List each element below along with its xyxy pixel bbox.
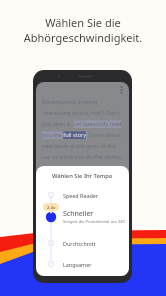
staticText: Steigert die Produktivität um 240 % bbox=[63, 219, 129, 225]
staticText: Speed Reader bbox=[63, 192, 99, 199]
staticText: Durchschnitt bbox=[63, 240, 96, 247]
button[interactable]: Schneller bbox=[36, 209, 129, 225]
staticText: You can even queue up a few bbox=[42, 164, 119, 172]
button[interactable]: Langsamer bbox=[36, 256, 129, 272]
staticText: just skim it. Let Speechify read bbox=[42, 120, 122, 128]
button[interactable]: Durchschnitt bbox=[36, 235, 129, 251]
staticText: Bookmarked another bbox=[42, 98, 99, 106]
staticText: Wählen Sie die Abhörgeschwindigkeit. bbox=[18, 15, 148, 45]
staticText: Schneller bbox=[63, 209, 94, 219]
staticText: interesting article, huh? Don't bbox=[42, 109, 120, 117]
staticText: Wählen Sie Ihr Tempo bbox=[52, 172, 113, 180]
staticText: car, or while you do the dishes. bbox=[42, 153, 123, 161]
other: More options bbox=[118, 85, 125, 92]
staticText: you the full story. Learn about bbox=[42, 131, 121, 139]
staticText: new ideas at the gym, in the bbox=[42, 142, 116, 150]
staticText: 2.4x bbox=[47, 205, 56, 211]
staticText: Langsamer bbox=[63, 261, 92, 268]
button[interactable]: Speed Reader bbox=[36, 187, 129, 203]
